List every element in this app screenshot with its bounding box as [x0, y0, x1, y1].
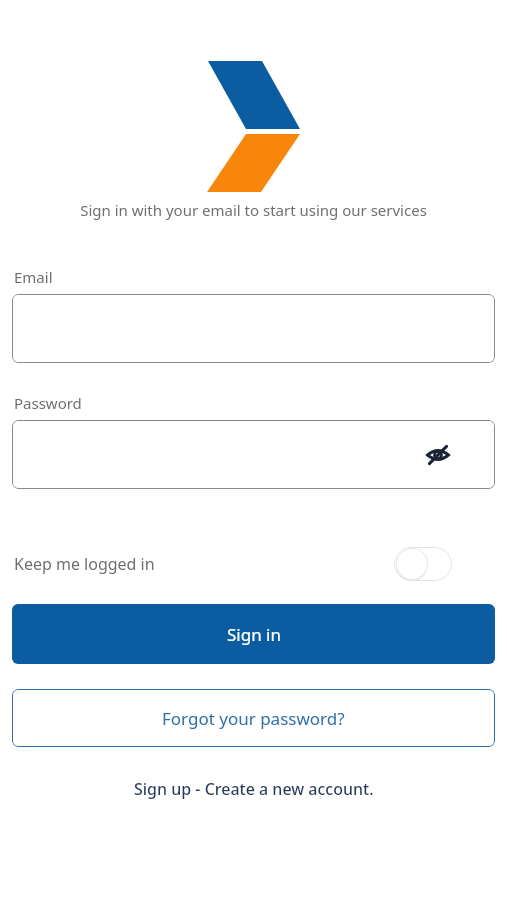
- button[interactable]: Keep me logged in: [0, 544, 507, 584]
- staticText: Password: [14, 393, 82, 413]
- staticText: Sign up - Create a new account.: [134, 778, 374, 800]
- staticText: Keep me logged in: [14, 553, 155, 575]
- staticText: Sign in with your email to start using o…: [80, 200, 427, 220]
- staticText: Sign in: [227, 623, 281, 646]
- button[interactable]: Keep me logged in toggle: [394, 547, 452, 581]
- button[interactable]: Forgot your password?: [12, 689, 495, 747]
- button[interactable]: Show password: [421, 438, 455, 472]
- button[interactable]: Sign in: [12, 604, 495, 664]
- staticText: Email: [14, 267, 53, 287]
- button[interactable]: [12, 294, 495, 363]
- staticText: Forgot your password?: [162, 707, 345, 730]
- button[interactable]: Show password: [12, 420, 495, 489]
- button[interactable]: Sign up - Create a new account.: [126, 774, 382, 804]
